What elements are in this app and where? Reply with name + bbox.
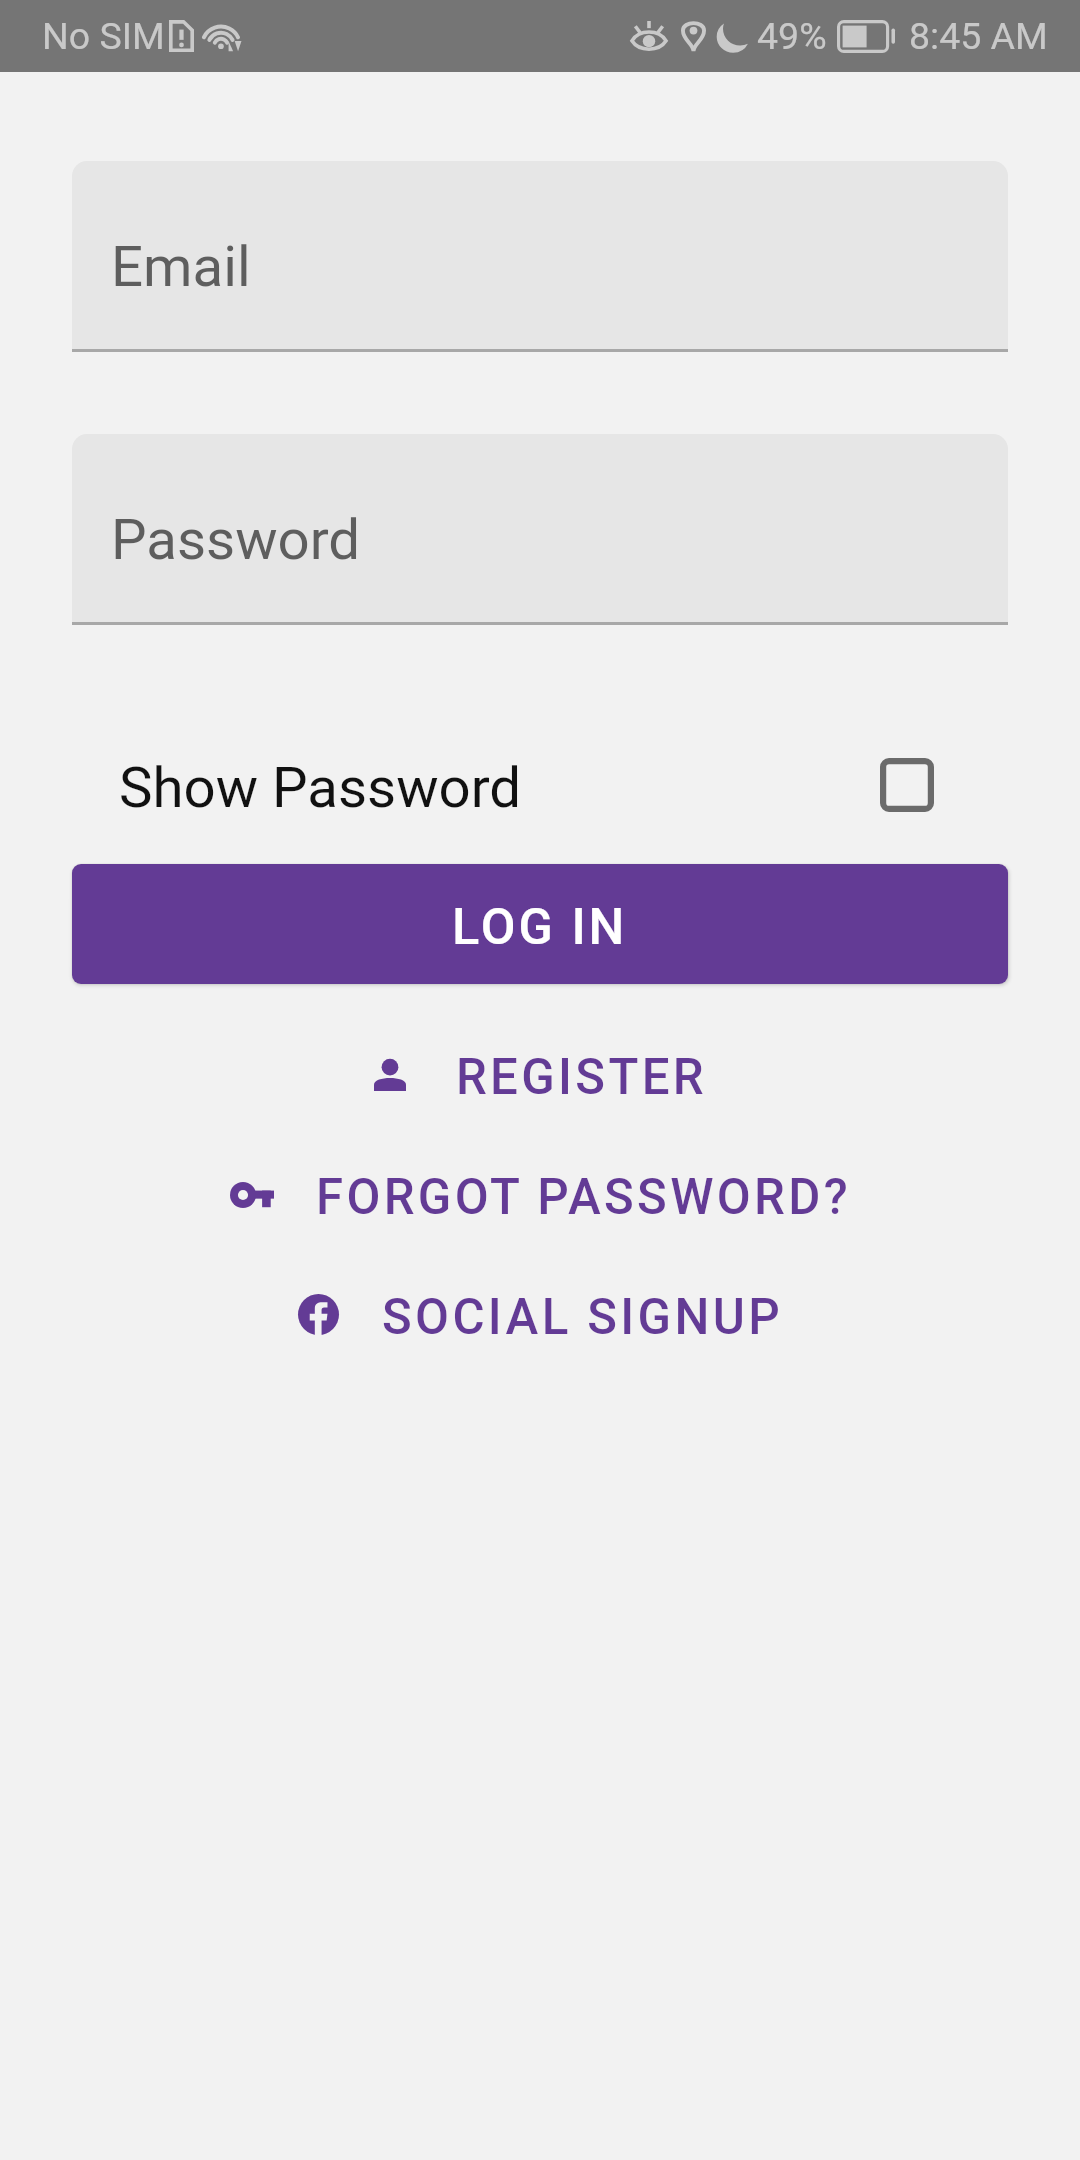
button[interactable]: Social signup — [298, 1288, 783, 1346]
staticText: FORGOT PASSWORD? — [316, 1168, 851, 1226]
staticText: LOG IN — [452, 897, 628, 956]
staticText: SOCIAL SIGNUP — [382, 1288, 783, 1346]
staticText: 8:45 AM — [909, 14, 1048, 58]
button[interactable]: LOG IN — [72, 864, 1008, 984]
button[interactable]: Password — [72, 434, 1008, 625]
button[interactable]: Email — [72, 161, 1008, 352]
button[interactable]: Forgot password — [230, 1168, 851, 1226]
button[interactable]: Register — [374, 1048, 707, 1106]
staticText: Show Password — [119, 755, 522, 821]
staticText: REGISTER — [456, 1048, 707, 1106]
staticText: Email — [111, 234, 251, 300]
staticText: Password — [111, 507, 361, 573]
staticText: No SIM — [42, 14, 165, 58]
staticText: 49% — [757, 14, 827, 58]
button[interactable]: Show Password — [72, 745, 1008, 825]
